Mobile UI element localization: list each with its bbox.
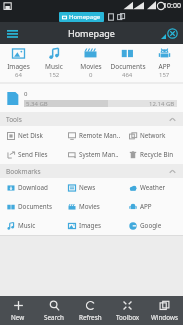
staticText: New — [11, 313, 25, 322]
staticText: Bookmarks — [6, 167, 41, 176]
staticText: 0 — [89, 71, 93, 79]
button[interactable]: Images — [61, 216, 122, 235]
staticText: Search — [44, 313, 64, 322]
button[interactable]: Recycle Bin — [122, 145, 183, 164]
button[interactable]: Toolbox — [109, 296, 146, 325]
button[interactable]: Search — [36, 296, 72, 325]
staticText: APP — [158, 62, 171, 71]
button[interactable]: Movies — [72, 44, 109, 82]
staticText: Tools — [6, 115, 22, 124]
staticText: Music — [45, 62, 63, 71]
staticText: Net Disk — [18, 131, 43, 140]
button[interactable]: New — [0, 296, 36, 325]
staticText: Homepage — [68, 27, 115, 39]
staticText: Images — [79, 221, 101, 230]
staticText: 157 — [159, 71, 170, 79]
button[interactable]: Menu — [4, 25, 20, 41]
button[interactable]: Download — [0, 178, 61, 197]
button[interactable]: Music — [0, 216, 61, 235]
button[interactable]: News — [61, 178, 122, 197]
button[interactable]: Images — [0, 44, 36, 82]
button[interactable]: Close — [164, 25, 180, 41]
button[interactable]: APP — [122, 197, 183, 216]
button[interactable]: Music — [36, 44, 72, 82]
staticText: Recycle Bin — [140, 150, 174, 159]
staticText: Documents — [110, 62, 146, 71]
button[interactable]: Windows — [146, 296, 183, 325]
button[interactable]: Documents — [109, 44, 146, 82]
button[interactable]: APP — [146, 44, 183, 82]
button[interactable]: Movies — [61, 197, 122, 216]
button[interactable]: Collapse Bookmarks — [169, 168, 176, 175]
button[interactable]: Network — [122, 126, 183, 145]
button[interactable]: Send Files — [0, 145, 61, 164]
staticText: Documents — [18, 202, 52, 211]
button[interactable]: System Man.. — [61, 145, 122, 164]
staticText: Network — [140, 131, 166, 140]
staticText: Google — [140, 221, 162, 230]
staticText: Refresh — [79, 313, 102, 322]
staticText: 152 — [49, 71, 60, 79]
staticText: Download — [18, 183, 48, 192]
button[interactable]: New tab — [107, 13, 115, 21]
button[interactable]: Collapse Tools — [169, 116, 176, 123]
staticText: System Man.. — [79, 150, 119, 159]
staticText: 64 — [15, 71, 22, 79]
staticText: Movies — [80, 62, 102, 71]
staticText: 12.14 GB — [149, 100, 175, 107]
staticText: Windows — [151, 313, 178, 322]
staticText: Send Files — [18, 150, 48, 159]
staticText: APP — [140, 202, 152, 211]
staticText: Images — [7, 62, 30, 71]
staticText: Remote Man.. — [79, 131, 121, 140]
staticText: 464 — [122, 71, 133, 79]
button[interactable]: Remote Man.. — [61, 126, 122, 145]
staticText: 5.34 GB — [26, 100, 48, 107]
staticText: Toolbox — [116, 313, 140, 322]
button[interactable]: Net Disk — [0, 126, 61, 145]
staticText: News — [79, 183, 96, 192]
staticText: Weather — [140, 183, 166, 192]
staticText: Movies — [79, 202, 100, 211]
staticText: 0 — [24, 90, 28, 98]
button[interactable]: Refresh — [72, 296, 109, 325]
button[interactable]: Weather — [122, 178, 183, 197]
button[interactable]: Homepage — [59, 12, 104, 22]
button[interactable]: Google — [122, 216, 183, 235]
staticText: 10:00 — [163, 1, 181, 11]
button[interactable]: Documents — [0, 197, 61, 216]
staticText: Music — [18, 221, 36, 230]
button[interactable]: 0 — [0, 84, 183, 112]
staticText: Homepage — [69, 13, 101, 21]
button[interactable]: Tabs — [117, 13, 125, 21]
